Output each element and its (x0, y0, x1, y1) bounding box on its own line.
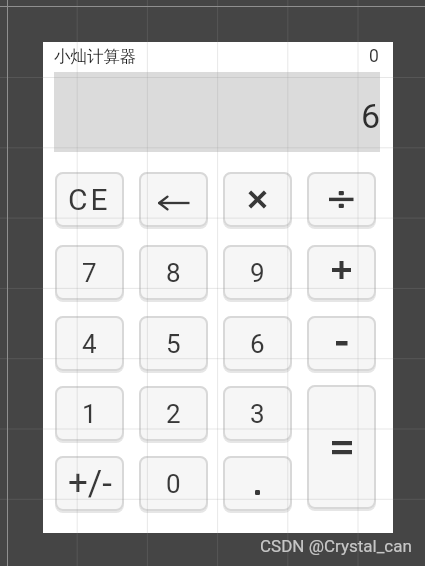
staticText: 0 (166, 469, 181, 499)
button[interactable] (139, 172, 208, 227)
staticText: 5 (166, 329, 181, 359)
button[interactable] (307, 172, 376, 227)
staticText: 8 (166, 258, 181, 288)
button[interactable]: 0 (139, 456, 208, 511)
button[interactable] (223, 172, 292, 227)
button[interactable]: 4 (55, 316, 124, 371)
staticText: +/- (68, 463, 112, 504)
button[interactable] (223, 456, 292, 511)
staticText: CE (68, 182, 111, 217)
button[interactable] (307, 385, 376, 509)
staticText: 0 (369, 46, 379, 67)
staticText: 7 (82, 258, 97, 288)
staticText: 4 (82, 329, 97, 359)
button[interactable]: 1 (55, 386, 124, 441)
staticText: 2 (166, 399, 181, 429)
button[interactable]: CE (55, 172, 124, 227)
button[interactable]: 8 (139, 245, 208, 300)
staticText: 6 (250, 329, 265, 359)
button[interactable] (307, 245, 376, 300)
button[interactable]: 9 (223, 245, 292, 300)
button[interactable]: 3 (223, 386, 292, 441)
staticText: 1 (82, 399, 97, 429)
button[interactable]: 7 (55, 245, 124, 300)
staticText: 小灿计算器 (54, 46, 137, 67)
staticText: 6 (361, 96, 381, 136)
button[interactable]: 6 (223, 316, 292, 371)
staticText: CSDN @Crystal_can (260, 536, 412, 556)
button[interactable] (307, 316, 376, 371)
button[interactable]: 2 (139, 386, 208, 441)
staticText: 9 (250, 258, 265, 288)
staticText: 3 (250, 399, 265, 429)
button[interactable]: 5 (139, 316, 208, 371)
button[interactable]: +/- (55, 456, 124, 511)
